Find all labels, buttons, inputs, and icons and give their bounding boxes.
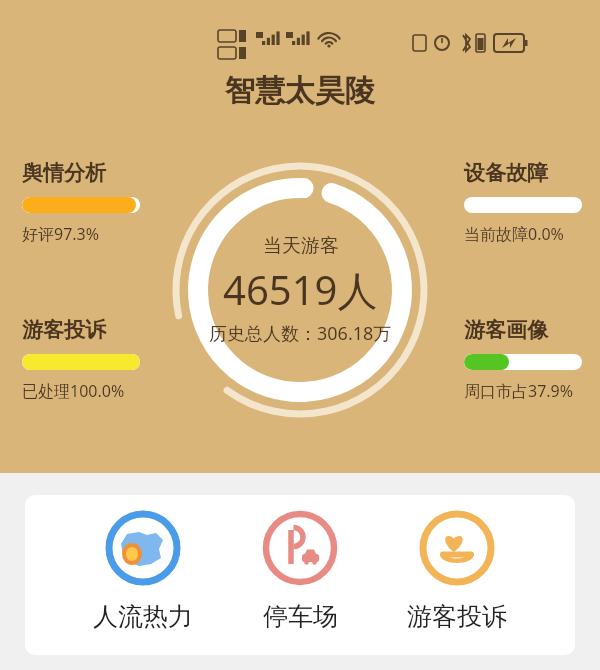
staticText: 好评97.3% [22, 223, 100, 245]
staticText: 已处理100.0% [22, 380, 125, 402]
staticText: 游客投诉 [22, 317, 106, 343]
staticText: 智慧太昊陵 [0, 72, 600, 110]
staticText: 周口市占37.9% [464, 380, 574, 402]
staticText: 游客画像 [464, 317, 548, 343]
staticText: 舆情分析 [22, 160, 106, 186]
staticText: 游客投诉 [407, 601, 507, 632]
button[interactable]: 设备故障 [464, 160, 582, 245]
button[interactable]: 游客投诉 [407, 509, 507, 632]
button[interactable]: 舆情分析 [22, 160, 140, 245]
button[interactable]: 游客画像 [464, 317, 582, 402]
staticText: 历史总人数：306.18万 [209, 321, 392, 346]
staticText: 停车场 [263, 601, 338, 632]
button[interactable]: 游客投诉 [22, 317, 140, 402]
staticText: 人流热力 [93, 601, 193, 632]
staticText: 设备故障 [464, 160, 548, 186]
staticText: 当前故障0.0% [464, 223, 564, 245]
staticText: 当天游客 [263, 234, 339, 258]
button[interactable]: 停车场 [261, 509, 339, 632]
button[interactable]: 人流热力 [93, 509, 193, 632]
staticText: 46519人 [223, 262, 378, 317]
